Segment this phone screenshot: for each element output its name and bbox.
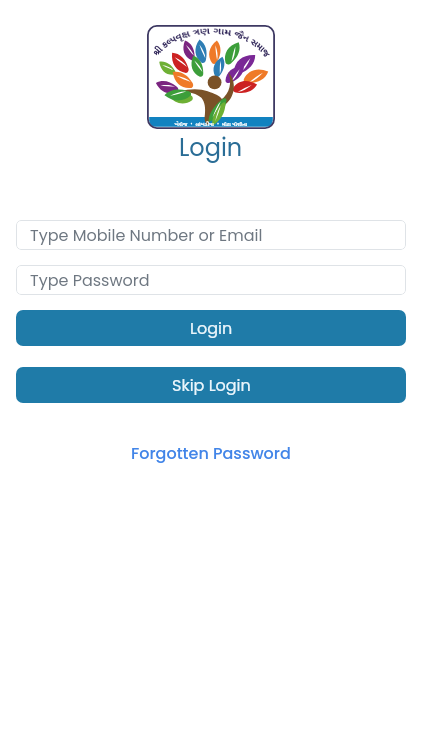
- staticText: Type Mobile Number or Email: [30, 224, 263, 246]
- button[interactable]: Forgotten Password: [121, 437, 301, 469]
- staticText: Skip Login: [172, 374, 251, 396]
- button[interactable]: Skip Login: [16, 367, 406, 403]
- staticText: Forgotten Password: [131, 442, 291, 464]
- staticText: Login: [179, 131, 243, 165]
- button[interactable]: Login: [16, 310, 406, 346]
- button[interactable]: Type Password: [16, 265, 406, 295]
- staticText: Login: [190, 317, 233, 339]
- button[interactable]: Type Mobile Number or Email: [16, 220, 406, 250]
- staticText: Type Password: [30, 269, 150, 291]
- other: Shree Kalpvruksh Tran Gaam Jain Samaj lo…: [147, 25, 275, 129]
